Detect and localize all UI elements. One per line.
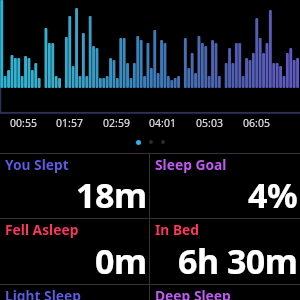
staticText: 02:59	[103, 116, 130, 130]
staticText: Sleep Goal	[155, 155, 227, 174]
staticText: Fell Asleep	[5, 220, 79, 239]
staticText: 05:03	[196, 116, 223, 130]
staticText: 0m	[95, 238, 147, 284]
button[interactable]: Fell Asleep	[0, 219, 149, 284]
button[interactable]: Sleep Goal	[150, 154, 300, 218]
staticText: 04:01	[149, 116, 176, 130]
staticText: Light Sleep	[5, 286, 82, 300]
staticText: In Bed	[155, 220, 200, 239]
staticText: 00:55	[10, 116, 37, 130]
button[interactable]: Deep Sleep	[150, 285, 300, 300]
staticText: 06:05	[243, 116, 270, 130]
staticText: 6h 30m	[178, 238, 298, 284]
button[interactable]: In Bed	[150, 219, 300, 284]
staticText: Deep Sleep	[155, 286, 231, 300]
staticText: 4%	[248, 172, 298, 218]
button[interactable]	[161, 140, 165, 144]
staticText: 01:57	[56, 116, 83, 130]
staticText: You Slept	[5, 155, 69, 174]
button[interactable]	[136, 140, 141, 145]
button[interactable]	[149, 140, 153, 144]
staticText: 18m	[76, 172, 147, 218]
button[interactable]: Light Sleep	[0, 285, 149, 300]
button[interactable]: You Slept	[0, 154, 149, 218]
